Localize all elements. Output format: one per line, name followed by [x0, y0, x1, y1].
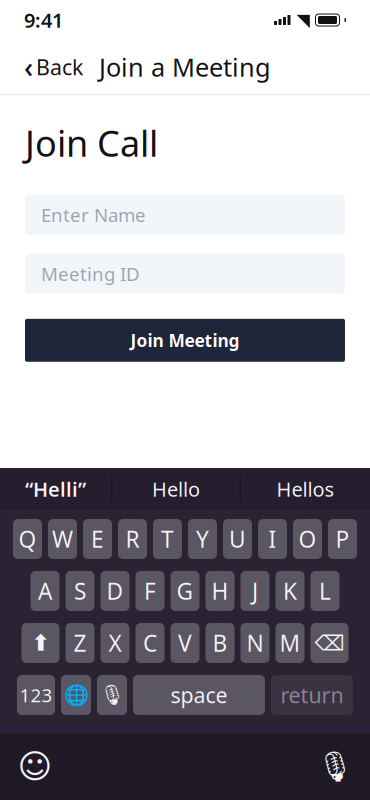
- button[interactable]: C: [135, 623, 164, 663]
- button[interactable]: J: [240, 571, 269, 611]
- staticText: 🎙: [99, 684, 124, 706]
- button[interactable]: ‹: [14, 40, 93, 94]
- staticText: Hello: [152, 476, 200, 502]
- staticText: ‹: [24, 48, 33, 86]
- button[interactable]: R: [118, 519, 147, 559]
- button[interactable]: W: [48, 519, 77, 559]
- staticText: H: [211, 576, 228, 606]
- button[interactable]: S: [65, 571, 94, 611]
- button[interactable]: M: [275, 623, 304, 663]
- staticText: ⌫: [314, 631, 344, 655]
- staticText: M: [279, 628, 300, 658]
- staticText: W: [52, 524, 73, 554]
- staticText: T: [161, 524, 174, 554]
- button[interactable]: E: [83, 519, 112, 559]
- staticText: I: [268, 524, 276, 554]
- staticText: Z: [73, 628, 86, 658]
- staticText: Back: [36, 53, 83, 81]
- staticText: Meeting ID: [41, 261, 140, 286]
- staticText: N: [246, 628, 263, 658]
- staticText: Q: [18, 524, 36, 554]
- button[interactable]: Z: [65, 623, 94, 663]
- staticText: S: [74, 576, 86, 606]
- staticText: U: [229, 524, 246, 554]
- staticText: L: [319, 576, 331, 606]
- button[interactable]: G: [170, 571, 199, 611]
- staticText: return: [280, 681, 343, 709]
- staticText: O: [298, 524, 316, 554]
- button[interactable]: return: [271, 675, 353, 715]
- button[interactable]: Emoji: [14, 745, 56, 787]
- button[interactable]: “Helli”: [0, 468, 111, 510]
- button[interactable]: Dictation: [314, 745, 356, 787]
- staticText: A: [38, 576, 52, 606]
- button[interactable]: Hello: [112, 468, 239, 510]
- button[interactable]: 123: [17, 675, 55, 715]
- staticText: C: [143, 628, 157, 658]
- button[interactable]: Next keyboard: [61, 675, 91, 715]
- button[interactable]: O: [293, 519, 322, 559]
- button[interactable]: I: [258, 519, 287, 559]
- staticText: B: [212, 628, 227, 658]
- button[interactable]: T: [153, 519, 182, 559]
- button[interactable]: L: [310, 571, 339, 611]
- staticText: V: [178, 628, 192, 658]
- staticText: Hellos: [276, 476, 334, 502]
- staticText: 🎙: [316, 750, 353, 783]
- button[interactable]: Dictation: [97, 675, 127, 715]
- staticText: F: [144, 576, 156, 606]
- staticText: 123: [19, 683, 52, 707]
- button[interactable]: Q: [13, 519, 42, 559]
- button[interactable]: H: [205, 571, 234, 611]
- staticText: Y: [196, 524, 209, 554]
- staticText: space: [170, 681, 227, 709]
- button[interactable]: B: [205, 623, 234, 663]
- staticText: G: [176, 576, 193, 606]
- button[interactable]: K: [275, 571, 304, 611]
- button[interactable]: Hellos: [241, 468, 370, 510]
- staticText: 🌐: [63, 684, 88, 706]
- button[interactable]: P: [328, 519, 357, 559]
- staticText: “Helli”: [25, 476, 86, 502]
- button[interactable]: N: [240, 623, 269, 663]
- staticText: X: [108, 628, 121, 658]
- button[interactable]: Y: [188, 519, 217, 559]
- staticText: J: [252, 576, 258, 606]
- staticText: P: [335, 524, 349, 554]
- button[interactable]: F: [135, 571, 164, 611]
- button[interactable]: space: [133, 675, 265, 715]
- staticText: 9:41: [24, 7, 63, 33]
- staticText: R: [125, 524, 139, 554]
- button[interactable]: U: [223, 519, 252, 559]
- button[interactable]: Delete: [310, 623, 348, 663]
- staticText: Join Call: [25, 119, 158, 167]
- staticText: Join a Meeting: [99, 50, 271, 84]
- button[interactable]: V: [170, 623, 199, 663]
- staticText: E: [91, 524, 104, 554]
- staticText: ☺: [17, 748, 52, 785]
- staticText: ◥: [296, 10, 309, 30]
- staticText: Join Meeting: [130, 329, 239, 352]
- button[interactable]: X: [100, 623, 129, 663]
- button[interactable]: Join Meeting: [25, 319, 345, 362]
- button[interactable]: D: [100, 571, 129, 611]
- staticText: Enter Name: [41, 202, 146, 227]
- staticText: K: [283, 576, 297, 606]
- button[interactable]: Shift: [21, 623, 59, 663]
- button[interactable]: A: [30, 571, 59, 611]
- staticText: D: [106, 576, 123, 606]
- staticText: ⬆: [31, 630, 50, 656]
